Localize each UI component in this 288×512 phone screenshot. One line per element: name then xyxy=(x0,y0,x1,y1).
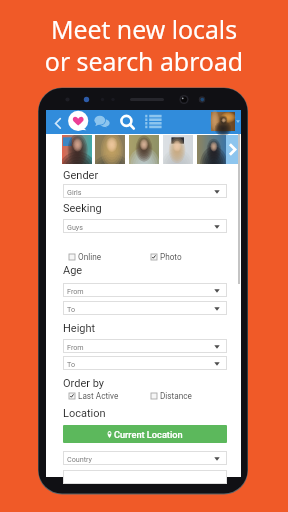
staticText: Gender xyxy=(63,169,99,182)
button[interactable]: To xyxy=(63,301,227,315)
staticText: From xyxy=(67,287,84,295)
button[interactable]: My profile xyxy=(211,112,235,131)
staticText: Meet new locals or search abroad xyxy=(0,12,288,78)
staticText: To xyxy=(67,360,76,368)
staticText: Seeking xyxy=(63,202,102,215)
button[interactable]: Back xyxy=(50,110,66,134)
button[interactable]: Profile photo xyxy=(163,135,193,164)
button[interactable]: Filters xyxy=(143,110,163,134)
button[interactable]: Likes xyxy=(64,110,88,134)
staticText: Girls xyxy=(67,188,82,196)
staticText: Location xyxy=(63,407,106,420)
button[interactable]: Guys xyxy=(63,219,227,233)
button[interactable]: Photo xyxy=(151,252,182,262)
staticText: Height xyxy=(63,322,96,335)
staticText: Age xyxy=(63,264,83,277)
staticText: To xyxy=(67,305,76,313)
button[interactable]: Current Location xyxy=(63,425,227,443)
staticText: Distance xyxy=(160,391,192,401)
button[interactable]: To xyxy=(63,356,227,370)
button[interactable]: Profile photo xyxy=(129,135,159,164)
button[interactable]: Distance xyxy=(151,391,192,401)
button[interactable]: Online xyxy=(69,252,101,262)
staticText: Photo xyxy=(160,252,182,262)
staticText: Country xyxy=(67,455,92,463)
button[interactable]: Country xyxy=(63,451,227,465)
button[interactable]: More people xyxy=(226,135,240,164)
button[interactable]: Last Active xyxy=(69,391,119,401)
button[interactable]: Messages xyxy=(92,110,112,134)
button[interactable]: Search xyxy=(118,110,140,134)
button[interactable]: Girls xyxy=(63,184,227,198)
staticText: Order by xyxy=(63,377,105,390)
staticText: Last Active xyxy=(78,391,119,401)
button[interactable]: Profile photo xyxy=(197,135,227,164)
button[interactable]: Profile photo xyxy=(62,135,92,164)
staticText: Online xyxy=(78,252,101,262)
staticText: Guys xyxy=(67,223,83,231)
button[interactable]: Profile photo xyxy=(95,135,125,164)
button[interactable]: From xyxy=(63,283,227,297)
staticText: From xyxy=(67,343,84,351)
button[interactable]: From xyxy=(63,339,227,353)
staticText: Current Location xyxy=(114,429,183,440)
button[interactable]: Select xyxy=(63,470,227,484)
